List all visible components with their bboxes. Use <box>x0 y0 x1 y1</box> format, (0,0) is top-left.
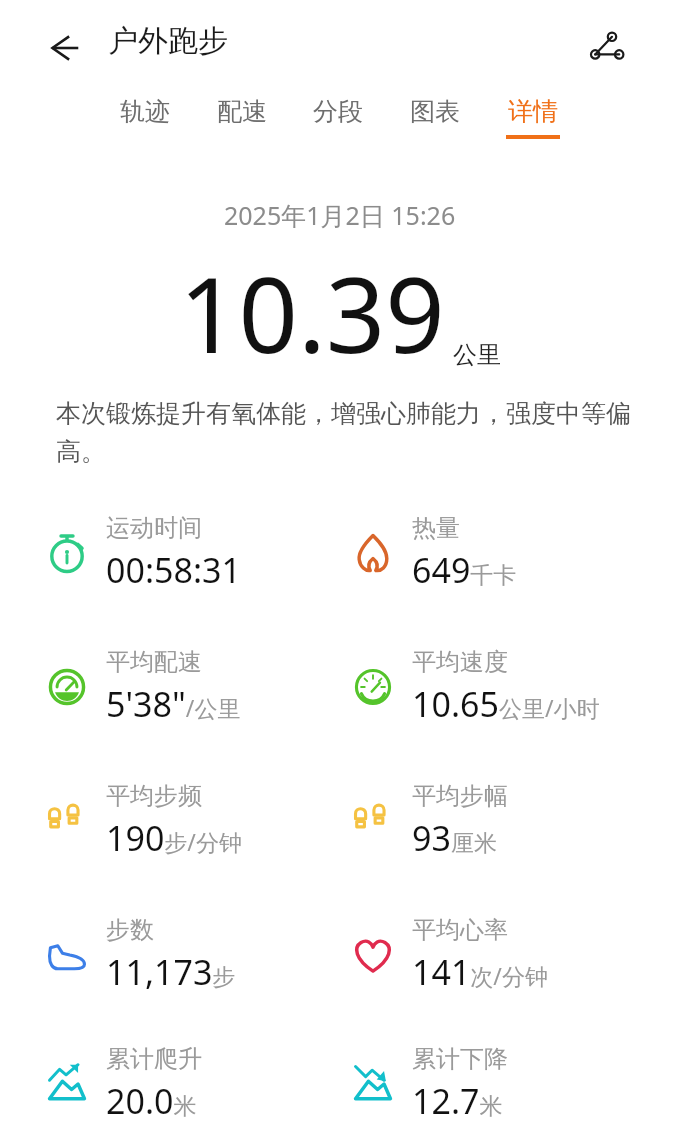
staticText: 分段 <box>313 96 363 127</box>
staticText: 93厘米 <box>412 815 497 861</box>
button[interactable]: 轨迹 <box>120 96 170 139</box>
button[interactable]: 平均配速 <box>44 620 340 754</box>
staticText: 热量 <box>412 513 460 543</box>
staticText: 平均速度 <box>412 647 508 677</box>
staticText: 10.65公里/小时 <box>412 681 600 727</box>
staticText: 运动时间 <box>106 513 202 543</box>
button[interactable]: 运动时间 <box>44 486 340 620</box>
staticText: 2025年1月2日 15:26 <box>224 198 456 232</box>
staticText: 平均步频 <box>106 781 202 811</box>
staticText: 141次/分钟 <box>412 949 548 995</box>
staticText: 平均配速 <box>106 647 202 677</box>
staticText: 配速 <box>217 96 267 127</box>
button[interactable]: 平均心率 <box>350 888 680 1022</box>
staticText: 平均心率 <box>412 915 508 945</box>
button[interactable]: 平均步频 <box>44 754 340 888</box>
staticText: 190步/分钟 <box>106 815 242 861</box>
staticText: 本次锻炼提升有氧体能，增强心肺能力，强度中等偏高。 <box>56 398 642 468</box>
button[interactable]: 平均速度 <box>350 620 680 754</box>
button[interactable]: 累计爬升 <box>44 1022 340 1146</box>
button[interactable]: 详情 <box>506 96 560 139</box>
button[interactable]: 平均步幅 <box>350 754 680 888</box>
staticText: 5'38"/公里 <box>106 681 241 727</box>
staticText: 图表 <box>410 96 460 127</box>
staticText: 00:58:31 <box>106 547 241 593</box>
button[interactable]: 热量 <box>350 486 680 620</box>
button[interactable]: Back <box>36 20 92 76</box>
staticText: 12.7米 <box>412 1078 503 1124</box>
staticText: 累计爬升 <box>106 1044 202 1074</box>
staticText: 户外跑步 <box>108 22 228 60</box>
button[interactable]: 图表 <box>410 96 460 139</box>
button[interactable]: 累计下降 <box>350 1022 680 1146</box>
button[interactable]: 配速 <box>217 96 267 139</box>
button[interactable]: 分段 <box>313 96 363 139</box>
staticText: 平均步幅 <box>412 781 508 811</box>
staticText: 步数 <box>106 915 154 945</box>
staticText: 11,173步 <box>106 949 236 995</box>
staticText: 轨迹 <box>120 96 170 127</box>
button[interactable]: Share <box>578 18 638 78</box>
button[interactable]: 步数 <box>44 888 340 1022</box>
staticText: 公里 <box>453 340 501 370</box>
staticText: 详情 <box>508 96 558 127</box>
staticText: 649千卡 <box>412 547 517 593</box>
staticText: 累计下降 <box>412 1044 508 1074</box>
staticText: 10.39 <box>179 242 445 384</box>
staticText: 20.0米 <box>106 1078 197 1124</box>
